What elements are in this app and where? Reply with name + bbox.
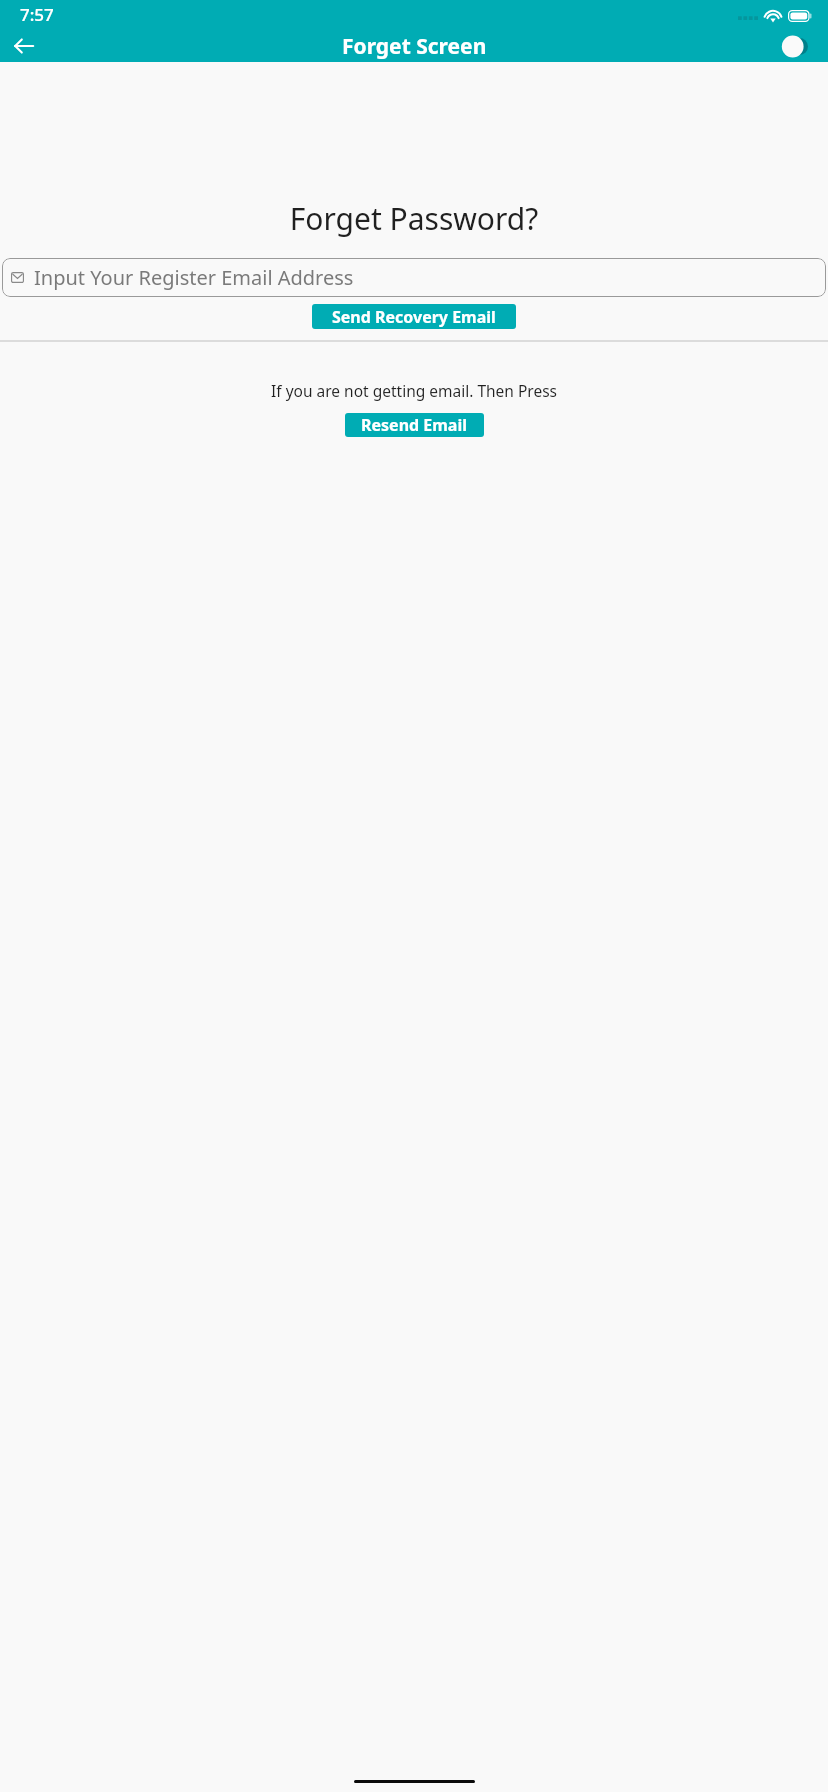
button[interactable]: Send Recovery Email [312, 304, 516, 329]
button[interactable]: Resend Email [345, 413, 484, 437]
button[interactable]: Input Your Register Email Address [2, 258, 826, 297]
staticText: Send Recovery Email [332, 306, 496, 328]
staticText: Forget Screen [342, 32, 487, 61]
staticText: Input Your Register Email Address [34, 264, 354, 291]
button[interactable]: Back [8, 30, 40, 62]
staticText: Forget Password? [0, 198, 828, 239]
button[interactable]: Toggle theme [778, 32, 814, 60]
staticText: Resend Email [361, 414, 468, 436]
staticText: 7:57 [20, 3, 54, 26]
staticText: If you are not getting email. Then Press [0, 380, 828, 401]
